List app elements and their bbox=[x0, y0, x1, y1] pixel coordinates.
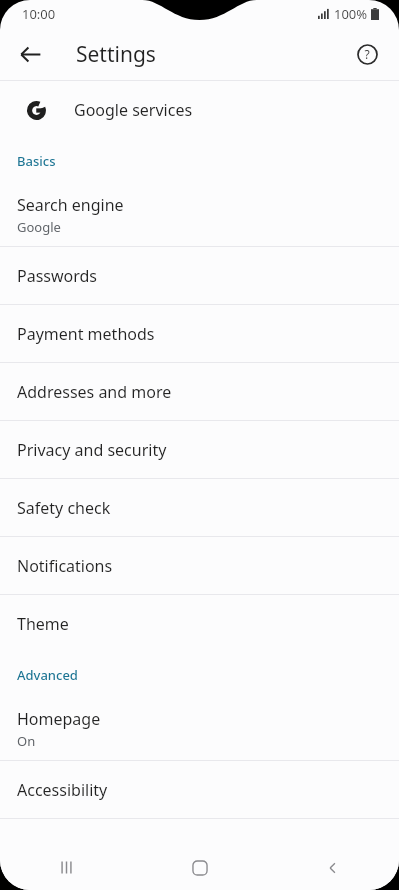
staticText: Google bbox=[17, 218, 61, 236]
button[interactable]: Home bbox=[133, 845, 266, 890]
staticText: Homepage bbox=[17, 708, 101, 730]
button[interactable]: Google services bbox=[0, 81, 399, 138]
button[interactable]: Recent apps bbox=[0, 845, 133, 890]
staticText: Settings bbox=[76, 40, 156, 69]
staticText: Advanced bbox=[17, 666, 78, 684]
staticText: Accessibility bbox=[17, 779, 108, 801]
staticText: Addresses and more bbox=[17, 381, 172, 403]
button[interactable]: Theme bbox=[0, 595, 399, 652]
staticText: Search engine bbox=[17, 194, 124, 216]
staticText: On bbox=[17, 732, 36, 750]
button[interactable]: Safety check bbox=[0, 479, 399, 536]
staticText: Basics bbox=[17, 152, 56, 170]
staticText: Theme bbox=[17, 613, 69, 635]
staticText: 100% bbox=[334, 5, 368, 23]
button[interactable]: Help bbox=[345, 32, 389, 76]
button[interactable]: Payment methods bbox=[0, 305, 399, 362]
staticText: 10:00 bbox=[22, 5, 56, 23]
button[interactable]: Privacy and security bbox=[0, 421, 399, 478]
staticText: ? bbox=[364, 46, 370, 62]
button[interactable]: Addresses and more bbox=[0, 363, 399, 420]
staticText: Privacy and security bbox=[17, 439, 167, 461]
button[interactable]: Notifications bbox=[0, 537, 399, 594]
staticText: Notifications bbox=[17, 555, 113, 577]
staticText: Payment methods bbox=[17, 323, 155, 345]
button[interactable]: Passwords bbox=[0, 247, 399, 304]
staticText: Google services bbox=[74, 99, 193, 121]
button[interactable]: Accessibility bbox=[0, 761, 399, 818]
staticText: Passwords bbox=[17, 265, 98, 287]
button[interactable]: Back bbox=[8, 32, 52, 76]
button[interactable]: Homepage bbox=[0, 698, 399, 760]
button[interactable]: Search engine bbox=[0, 184, 399, 246]
button[interactable]: Back bbox=[266, 845, 399, 890]
staticText: Safety check bbox=[17, 497, 111, 519]
